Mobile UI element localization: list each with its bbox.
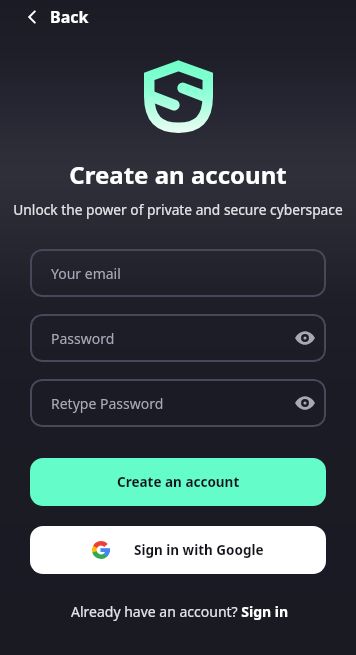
button[interactable]: Already have an account? Sign in <box>65 598 295 625</box>
button[interactable]: Back <box>19 1 95 33</box>
staticText: Sign in with Google <box>134 541 264 559</box>
button[interactable]: Show password <box>293 391 317 415</box>
staticText: Retype Password <box>51 394 164 413</box>
button[interactable]: Retype Password <box>30 379 326 427</box>
staticText: Unlock the power of private and secure c… <box>0 200 356 219</box>
button[interactable]: Password <box>30 314 326 362</box>
button[interactable]: Sign in with Google <box>30 526 326 574</box>
button[interactable]: Your email <box>30 249 326 297</box>
staticText: Back <box>50 6 89 28</box>
button[interactable]: Create an account <box>30 458 326 506</box>
staticText: Already have an account? Sign in <box>71 602 289 621</box>
staticText: Password <box>51 329 115 348</box>
staticText: Your email <box>51 264 121 283</box>
staticText: Create an account <box>117 473 240 491</box>
button[interactable]: Show password <box>293 326 317 350</box>
staticText: Create an account <box>0 158 356 191</box>
